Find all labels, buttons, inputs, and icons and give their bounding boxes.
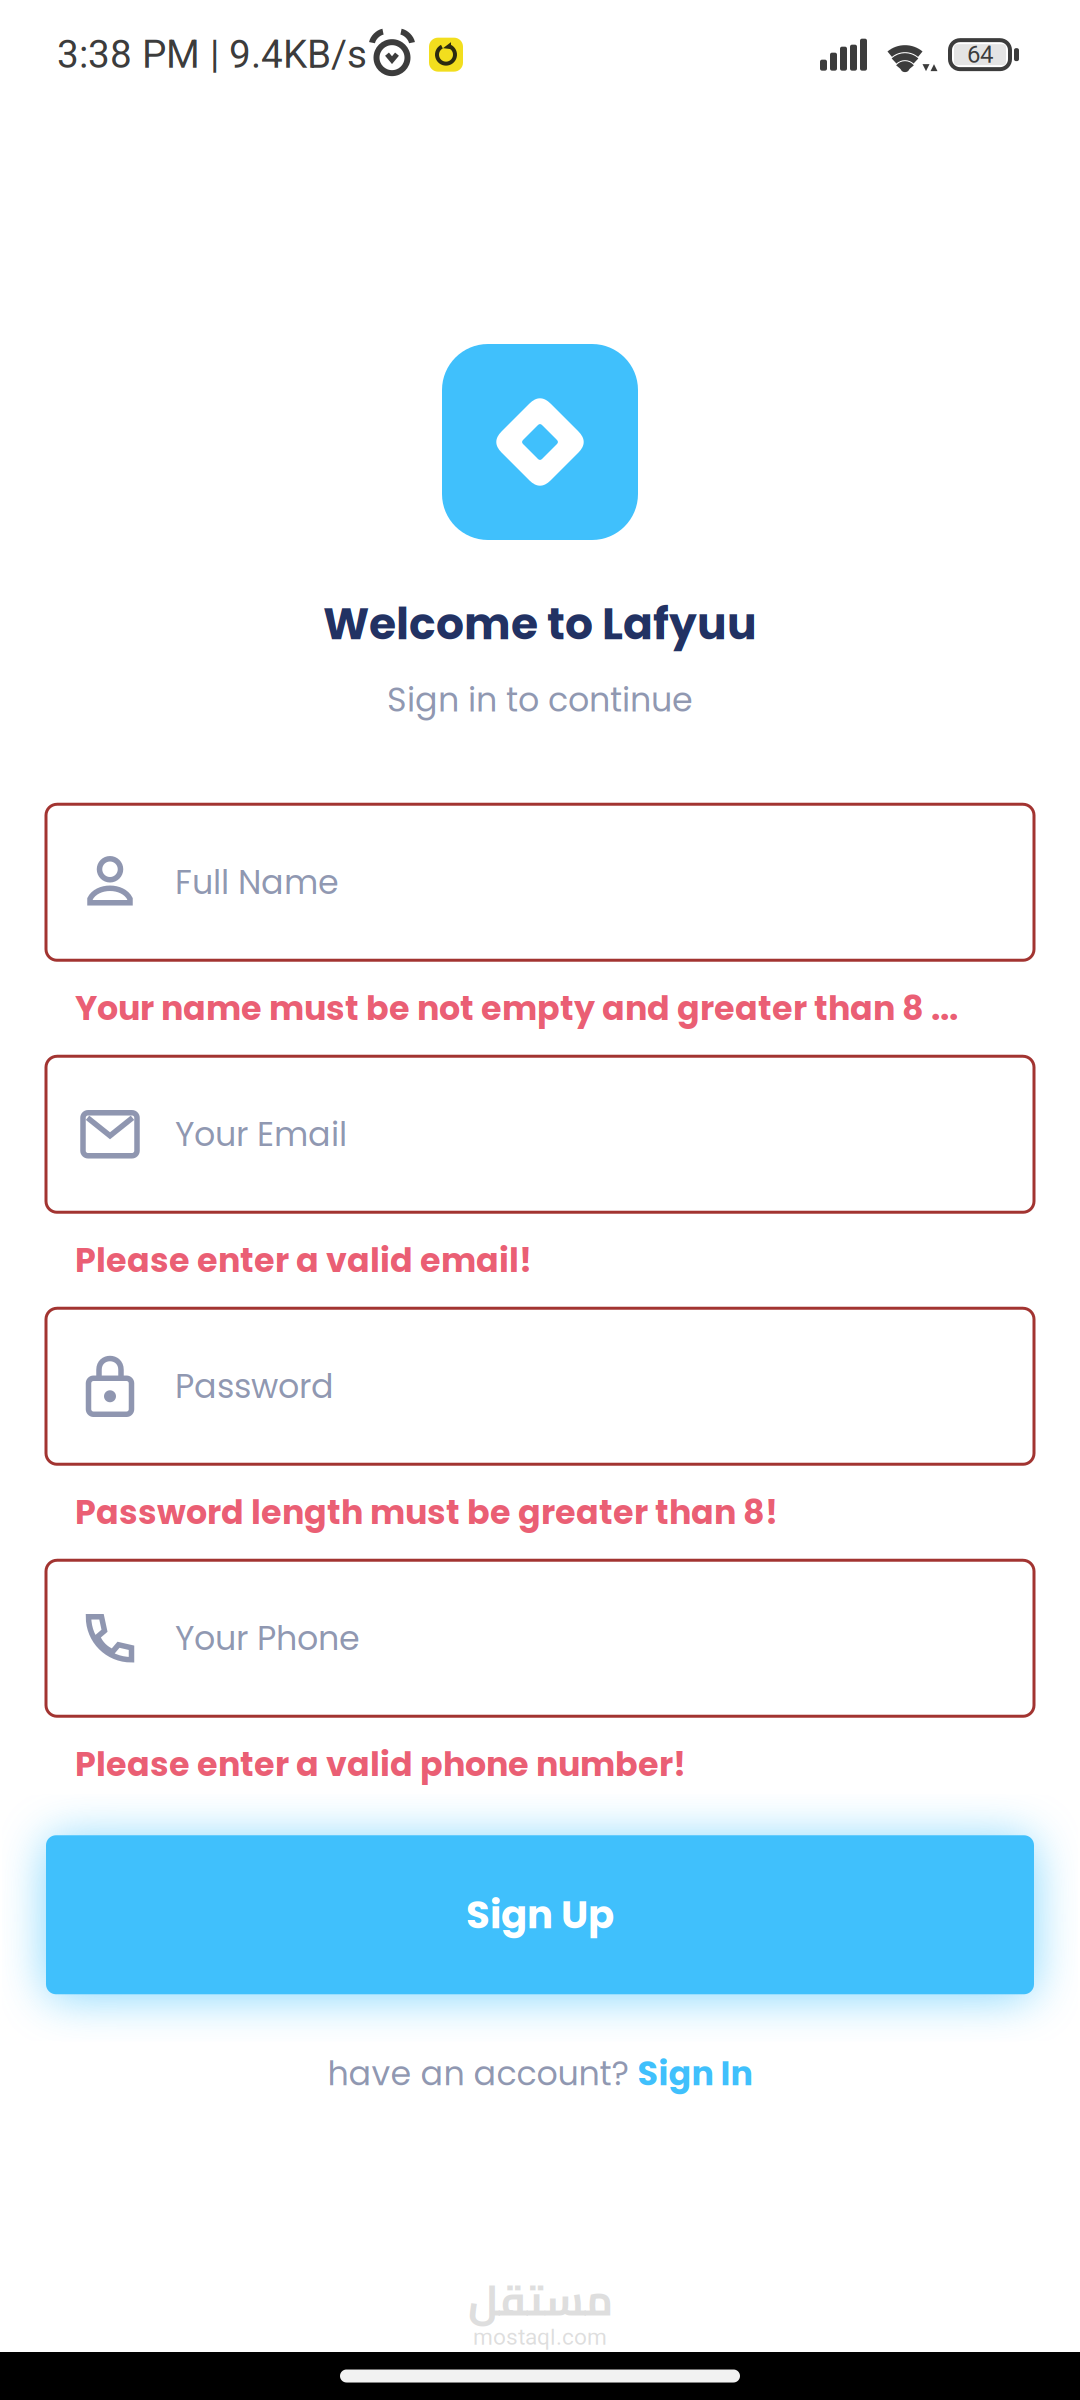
staticText: مستقل — [467, 2260, 612, 2340]
button[interactable]: Sign Up — [46, 1835, 1034, 1994]
staticText: 64 — [967, 41, 993, 69]
staticText: Your Phone — [175, 1615, 360, 1662]
staticText: Welcome to Lafyuu — [323, 593, 757, 655]
staticText: Sign in to continue — [387, 677, 693, 723]
staticText: Your name must be not empty and greater … — [75, 985, 958, 1032]
staticText: Full Name — [175, 859, 339, 906]
staticText: 3:38 PM | 9.4KB/s — [57, 32, 367, 77]
staticText: Password length must be greater than 8! — [75, 1489, 778, 1536]
staticText: have an account? — [327, 2050, 637, 2097]
staticText: Please enter a valid email! — [75, 1237, 532, 1284]
staticText: mostaql.com — [473, 2324, 607, 2350]
button[interactable]: Password — [46, 1308, 1034, 1464]
staticText: Please enter a valid phone number! — [75, 1741, 686, 1788]
button[interactable]: Full Name — [46, 804, 1034, 960]
button[interactable]: have an account? — [303, 2036, 776, 2111]
staticText: Sign Up — [466, 1888, 614, 1942]
button[interactable]: Your Phone — [46, 1560, 1034, 1716]
staticText: Sign In — [637, 2050, 752, 2097]
button[interactable]: Your Email — [46, 1056, 1034, 1212]
staticText: Password — [175, 1363, 334, 1410]
staticText: Your Email — [175, 1111, 347, 1158]
